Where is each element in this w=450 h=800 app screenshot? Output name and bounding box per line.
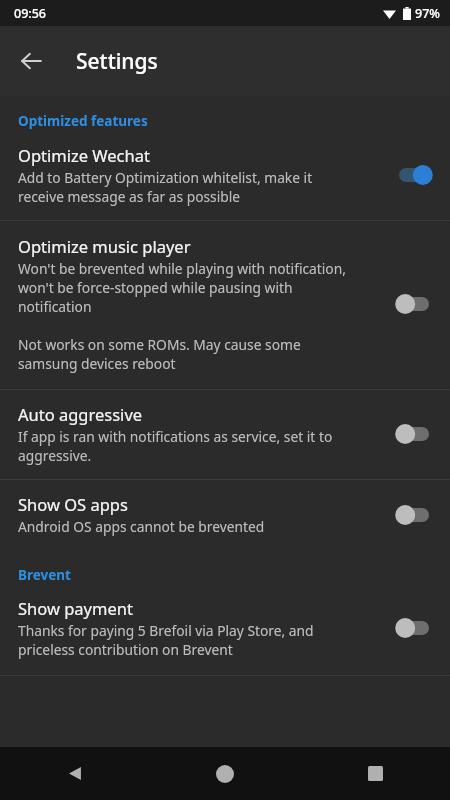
staticText: 09:56 xyxy=(14,5,47,22)
button[interactable]: Toggle on xyxy=(392,160,436,190)
button[interactable]: Toggle off xyxy=(392,500,436,530)
button[interactable]: Show OS apps xyxy=(0,480,450,552)
button[interactable]: Toggle off xyxy=(392,419,436,449)
button[interactable]: Optimize Wechat xyxy=(0,132,450,220)
staticText: Add to Battery Optimization whitelist, m… xyxy=(18,168,313,206)
button[interactable]: Toggle off xyxy=(392,289,436,319)
button[interactable]: Back xyxy=(0,747,150,800)
button[interactable]: Show payment xyxy=(0,586,450,675)
staticText: If app is ran with notifications as serv… xyxy=(18,427,333,465)
button[interactable]: Toggle off xyxy=(392,613,436,643)
staticText: Android OS apps cannot be brevented xyxy=(18,517,265,536)
staticText: Optimized features xyxy=(18,112,148,130)
staticText: Show payment xyxy=(18,597,133,619)
staticText: Optimize music player xyxy=(18,235,191,257)
staticText: Show OS apps xyxy=(18,493,128,515)
button[interactable]: Recents xyxy=(300,747,450,800)
staticText: Settings xyxy=(76,47,158,76)
button[interactable]: Auto aggressive xyxy=(0,390,450,479)
staticText: Auto aggressive xyxy=(18,403,143,425)
staticText: Optimize Wechat xyxy=(18,144,150,166)
button[interactable]: Back xyxy=(9,39,53,83)
button[interactable]: Optimize music player xyxy=(0,221,450,389)
button[interactable]: Home xyxy=(150,747,300,800)
staticText: Brevent xyxy=(18,566,71,584)
staticText: 97% xyxy=(415,5,440,22)
staticText: Thanks for paying 5 Brefoil via Play Sto… xyxy=(18,621,314,659)
staticText: Won't be brevented while playing with no… xyxy=(18,259,346,373)
